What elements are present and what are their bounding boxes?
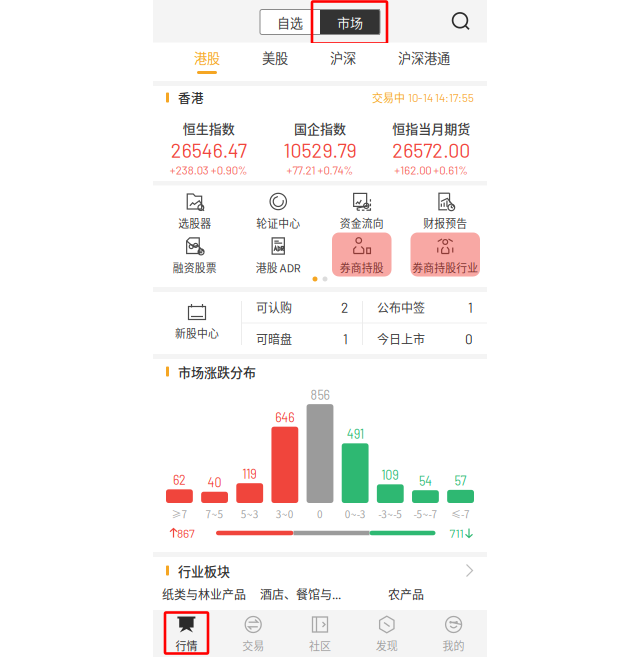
- staticText: 2: [341, 299, 348, 315]
- button[interactable]: 融资股票: [153, 232, 236, 276]
- button[interactable]: 新股中心: [153, 292, 241, 354]
- staticText: 711: [449, 526, 463, 540]
- button[interactable]: 恒生指数: [153, 120, 264, 176]
- staticText: 可认购: [256, 299, 292, 316]
- staticText: 市场: [337, 13, 363, 31]
- staticText: 券商持股行业: [412, 260, 478, 275]
- staticText: 40: [208, 475, 222, 490]
- staticText: 0~-3: [345, 507, 366, 521]
- staticText: 资金流向: [340, 215, 384, 231]
- staticText: 26546.47: [171, 138, 247, 162]
- staticText: 7~5: [206, 507, 224, 521]
- staticText: 3~0: [276, 507, 294, 521]
- staticText: 5~3: [241, 507, 259, 521]
- staticText: 0: [317, 507, 323, 521]
- staticText: ≥7: [171, 507, 187, 521]
- staticText: 交易中: [372, 89, 405, 105]
- button[interactable]: 美股: [262, 43, 288, 81]
- staticText: 62: [173, 472, 186, 487]
- staticText: 国企指数: [294, 119, 346, 137]
- button[interactable]: 券商持股行业: [403, 232, 487, 276]
- button[interactable]: 发现: [353, 610, 420, 657]
- staticText: 57: [455, 473, 467, 488]
- staticText: 自选: [277, 13, 303, 31]
- staticText: 美股: [262, 48, 288, 67]
- staticText: 恒生指数: [183, 119, 235, 137]
- button[interactable]: 港股 ADR: [236, 232, 320, 276]
- staticText: +238.03 +0.90%: [170, 163, 248, 177]
- button[interactable]: 市场: [320, 9, 380, 34]
- staticText: ≤-7: [451, 507, 470, 521]
- button[interactable]: 港股: [194, 43, 220, 81]
- button[interactable]: 沪深: [330, 43, 356, 81]
- button[interactable]: 选股器: [153, 188, 236, 232]
- staticText: 纸类与林业产品: [162, 585, 246, 603]
- staticText: 券商持股: [340, 260, 384, 275]
- staticText: 港股: [194, 48, 220, 67]
- button[interactable]: 酒店、餐馆与...: [260, 585, 341, 603]
- staticText: 0: [465, 331, 473, 347]
- staticText: 856: [310, 387, 329, 402]
- button[interactable]: 纸类与林业产品: [162, 585, 246, 603]
- staticText: 轮证中心: [256, 215, 300, 231]
- staticText: 酒店、餐馆与...: [260, 585, 341, 603]
- staticText: 1: [468, 299, 473, 315]
- button[interactable]: 国企指数: [264, 120, 376, 176]
- button[interactable]: 可认购: [242, 292, 362, 322]
- button[interactable]: 轮证中心: [236, 188, 320, 232]
- button[interactable]: 券商持股: [320, 232, 403, 276]
- button[interactable]: 恒指当月期货: [376, 120, 487, 176]
- button[interactable]: 资金流向: [320, 188, 403, 232]
- staticText: 财报预告: [423, 215, 467, 231]
- staticText: 港股 ADR: [256, 260, 301, 275]
- staticText: +77.21 +0.74%: [286, 163, 353, 177]
- staticText: 1: [343, 331, 348, 347]
- staticText: 新股中心: [175, 325, 219, 341]
- staticText: 恒指当月期货: [392, 119, 470, 137]
- staticText: 香港: [178, 88, 204, 107]
- staticText: 今日上市: [377, 330, 425, 347]
- button[interactable]: 行情: [153, 610, 220, 657]
- staticText: 646: [275, 410, 294, 425]
- staticText: 社区: [309, 637, 331, 653]
- button[interactable]: 可暗盘: [242, 323, 362, 354]
- button[interactable]: 自选: [260, 9, 320, 34]
- staticText: -5~-7: [413, 507, 437, 521]
- staticText: 融资股票: [173, 260, 217, 275]
- staticText: 491: [347, 426, 364, 441]
- staticText: 农产品: [388, 585, 424, 603]
- button[interactable]: 今日上市: [363, 323, 487, 354]
- staticText: 119: [242, 466, 257, 481]
- staticText: 10-14 14:17:55: [408, 91, 474, 104]
- staticText: 沪深: [330, 48, 356, 67]
- button[interactable]: 社区: [287, 610, 353, 657]
- staticText: 选股器: [178, 215, 211, 231]
- button[interactable]: 农产品: [388, 585, 424, 603]
- staticText: 109: [381, 467, 399, 482]
- staticText: 沪深港通: [398, 48, 450, 67]
- button[interactable]: 行业板块: [153, 557, 487, 584]
- staticText: 行业板块: [178, 561, 230, 580]
- staticText: 交易: [242, 637, 264, 653]
- button[interactable]: 我的: [420, 610, 487, 657]
- staticText: 可暗盘: [256, 330, 292, 347]
- button[interactable]: 财报预告: [403, 188, 487, 232]
- staticText: -3~-5: [378, 507, 402, 521]
- staticText: 发现: [376, 637, 398, 653]
- staticText: 867: [177, 526, 195, 540]
- staticText: 我的: [443, 637, 465, 653]
- staticText: +162.00 +0.61%: [394, 163, 468, 177]
- staticText: 公布中签: [377, 299, 425, 316]
- button[interactable]: 沪深港通: [398, 43, 450, 81]
- staticText: 市场涨跌分布: [178, 362, 256, 381]
- staticText: 54: [419, 473, 432, 488]
- staticText: 26572.00: [392, 138, 470, 162]
- button[interactable]: 公布中签: [363, 292, 487, 322]
- staticText: 行情: [175, 637, 197, 653]
- button[interactable]: Search: [441, 1, 481, 41]
- button[interactable]: 交易: [220, 610, 287, 657]
- staticText: 10529.79: [283, 138, 356, 162]
